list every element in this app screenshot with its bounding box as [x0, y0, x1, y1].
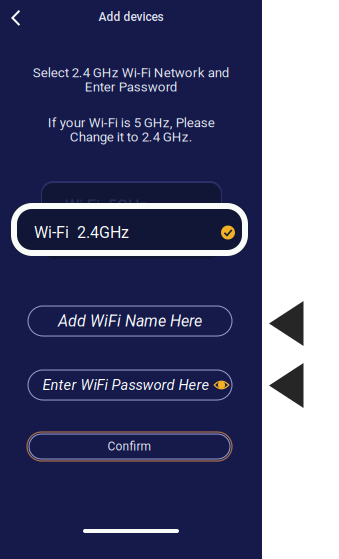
staticText: If your Wi-Fi is 5 GHz, Please Change it…	[47, 115, 214, 144]
staticText: Add devices	[98, 10, 163, 24]
button[interactable]: Add WiFi Name Here	[28, 306, 232, 336]
staticText: Wi-Fi 5GHz	[65, 197, 147, 215]
staticText: Wi-Fi 2.4GHz	[34, 223, 129, 242]
staticText: Add WiFi Name Here	[58, 312, 202, 330]
staticText: Select 2.4 GHz Wi-Fi Network and Enter P…	[32, 65, 229, 94]
button[interactable]: Confirm	[27, 432, 232, 461]
staticText: Confirm	[107, 440, 151, 453]
staticText: Enter WiFi Password Here	[42, 377, 209, 393]
button[interactable]: Enter WiFi Password Here	[28, 370, 232, 400]
button[interactable]: Wi-Fi 2.4GHz	[11, 203, 248, 256]
button[interactable]: Back	[0, 3, 32, 33]
